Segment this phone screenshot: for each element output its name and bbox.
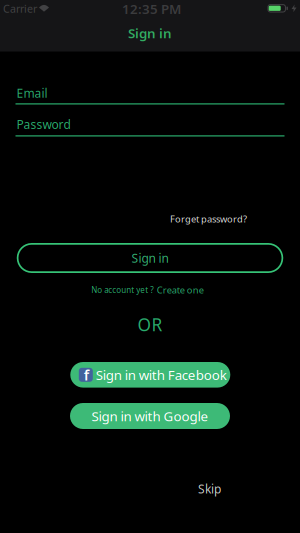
staticText: Create one [157,284,204,296]
button[interactable]: No account yet ? [91,284,204,296]
staticText: Carrier [3,1,37,16]
button[interactable]: Forget password? [170,213,247,225]
staticText: Sign in with Facebook [96,366,227,384]
button[interactable]: Sign in [17,243,283,273]
staticText: OR [137,313,162,336]
staticText: Sign in with Google [91,407,208,425]
staticText: Email [16,85,47,101]
button[interactable]: Skip [198,481,221,497]
staticText: Skip [198,481,221,497]
staticText: 12:35 PM [122,0,181,18]
button[interactable]: Sign in with Google [70,403,230,429]
staticText: Sign in [128,24,172,42]
staticText: f [84,365,89,385]
button[interactable]: f [70,362,230,388]
staticText: Password [16,116,70,132]
staticText: No account yet ? [91,285,153,295]
staticText: Forget password? [170,213,247,225]
staticText: Sign in [131,250,168,266]
button[interactable]: Password [15,118,284,143]
button[interactable]: Email [15,86,284,107]
